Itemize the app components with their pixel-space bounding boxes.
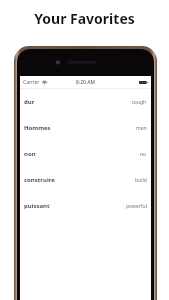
staticText: dur xyxy=(24,98,35,106)
button[interactable]: dur xyxy=(20,89,151,115)
staticText: non xyxy=(24,150,36,158)
button[interactable]: construire xyxy=(20,167,151,193)
staticText: puissant xyxy=(24,202,50,210)
staticText: men xyxy=(136,125,147,132)
staticText: construire xyxy=(24,176,55,184)
staticText: no xyxy=(140,151,147,158)
staticText: 8:20 AM xyxy=(76,79,96,86)
staticText: Your Favorites xyxy=(34,9,135,28)
other: Battery xyxy=(139,80,148,85)
button[interactable]: Hommes xyxy=(20,115,151,141)
staticText: tough xyxy=(132,99,147,106)
staticText: Carrier xyxy=(23,79,40,86)
staticText: Hommes xyxy=(24,124,51,132)
staticText: build xyxy=(135,177,147,184)
staticText: powerful xyxy=(126,203,147,210)
button[interactable]: non xyxy=(20,141,151,167)
button[interactable]: puissant xyxy=(20,193,151,219)
